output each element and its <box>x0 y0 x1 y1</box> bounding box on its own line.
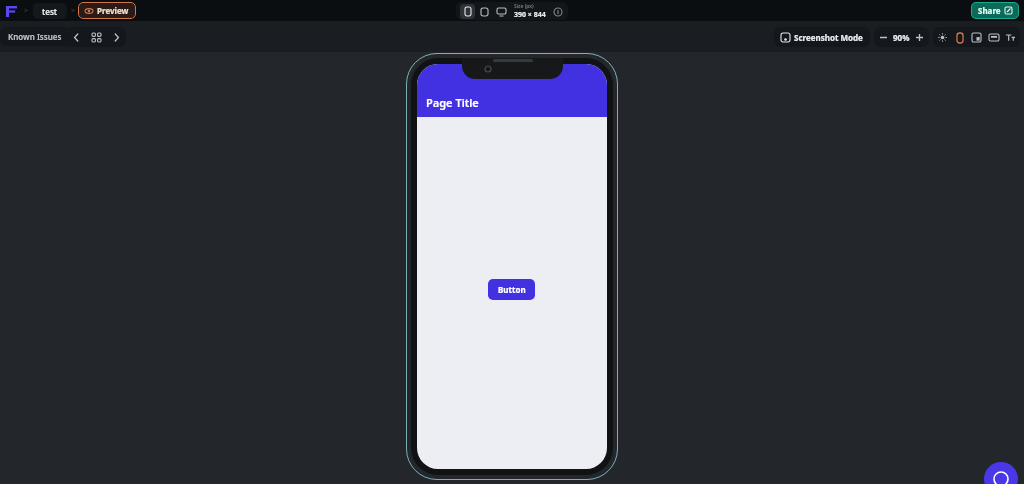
staticText: Page Title <box>426 95 479 110</box>
button[interactable]: Previous <box>66 27 86 47</box>
button[interactable]: Brightness <box>934 29 951 46</box>
button[interactable]: Preview <box>78 2 136 19</box>
staticText: Known Issues <box>8 31 62 42</box>
staticText: Share <box>978 5 1001 16</box>
button[interactable]: Text size <box>1002 29 1019 46</box>
staticText: 90% <box>893 32 910 43</box>
staticText: Size (px) <box>514 3 534 10</box>
staticText: > <box>24 6 29 16</box>
button[interactable]: Zoom out <box>876 30 891 45</box>
staticText: test <box>42 6 58 17</box>
button[interactable]: Screenshot Mode <box>774 27 870 47</box>
button[interactable]: Info <box>551 5 564 18</box>
button[interactable]: Layout panel <box>968 29 985 46</box>
button[interactable]: Known Issues <box>0 27 70 46</box>
button[interactable]: Next <box>106 27 126 47</box>
button[interactable]: Grid view <box>86 27 106 47</box>
button[interactable]: Phone <box>460 4 475 19</box>
button[interactable]: Share <box>971 2 1019 19</box>
button[interactable]: Zoom in <box>912 30 927 45</box>
button[interactable]: Tablet <box>477 4 492 19</box>
button[interactable]: Keyboard <box>985 29 1002 46</box>
button[interactable]: Device frame <box>951 29 968 46</box>
button[interactable]: Help <box>984 462 1018 484</box>
staticText: Screenshot Mode <box>794 32 863 43</box>
staticText: Preview <box>97 5 129 16</box>
staticText: Button <box>498 284 526 295</box>
staticText: > <box>71 6 76 16</box>
button[interactable]: Desktop <box>494 4 509 19</box>
button[interactable]: Button <box>488 279 535 300</box>
button[interactable]: Home <box>2 2 20 20</box>
button[interactable]: test <box>33 3 67 19</box>
staticText: 390 × 844 <box>514 10 546 20</box>
